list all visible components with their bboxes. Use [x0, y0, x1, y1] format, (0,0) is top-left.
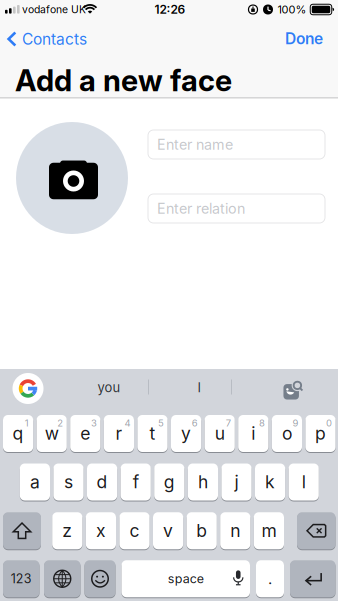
button[interactable]: Image search: [282, 381, 304, 400]
staticText: 8: [259, 417, 265, 429]
staticText: 3: [91, 417, 97, 429]
button[interactable]: Add photo: [16, 122, 128, 234]
staticText: o: [282, 423, 292, 444]
staticText: j: [234, 471, 238, 493]
button[interactable]: space: [121, 560, 250, 598]
button[interactable]: p: [305, 414, 336, 452]
button[interactable]: Done: [243, 26, 323, 50]
button[interactable]: Emoji: [84, 560, 115, 598]
staticText: 9: [292, 417, 298, 429]
staticText: 5: [158, 417, 164, 429]
staticText: i: [251, 423, 255, 444]
staticText: s: [64, 471, 73, 493]
staticText: a: [30, 471, 40, 493]
button[interactable]: Google search: [12, 373, 43, 404]
staticText: vodafone UK: [22, 3, 86, 16]
button[interactable]: f: [121, 463, 151, 501]
button[interactable]: a: [20, 463, 50, 501]
staticText: 0: [326, 417, 332, 429]
button[interactable]: Enter name: [148, 130, 325, 159]
button[interactable]: v: [153, 512, 183, 550]
button[interactable]: e: [70, 414, 100, 452]
staticText: 100%: [277, 3, 306, 16]
staticText: p: [315, 423, 326, 444]
staticText: Contacts: [22, 30, 87, 48]
button[interactable]: j: [221, 463, 252, 501]
staticText: 4: [124, 417, 130, 429]
button[interactable]: c: [119, 512, 150, 550]
button[interactable]: Enter relation: [148, 194, 325, 223]
staticText: k: [265, 471, 275, 493]
staticText: c: [129, 520, 139, 541]
staticText: f: [133, 471, 139, 493]
staticText: t: [149, 423, 155, 444]
staticText: Done: [285, 29, 323, 48]
button[interactable]: Delete: [297, 512, 335, 550]
staticText: z: [62, 520, 72, 541]
staticText: u: [215, 423, 225, 444]
button[interactable]: Back to Contacts: [7, 27, 117, 51]
staticText: m: [261, 520, 276, 541]
button[interactable]: Return: [290, 560, 335, 598]
staticText: Enter name: [157, 136, 233, 153]
staticText: d: [97, 471, 108, 493]
staticText: l: [302, 471, 306, 493]
staticText: q: [13, 423, 24, 444]
button[interactable]: t: [137, 414, 168, 452]
staticText: b: [196, 520, 207, 541]
button[interactable]: k: [255, 463, 285, 501]
button[interactable]: you: [79, 375, 139, 399]
button[interactable]: s: [53, 463, 84, 501]
button[interactable]: z: [52, 512, 82, 550]
staticText: 2: [57, 417, 63, 429]
button[interactable]: 123: [3, 560, 39, 598]
button[interactable]: Next keyboard: [44, 560, 80, 598]
staticText: y: [181, 423, 191, 444]
staticText: n: [230, 520, 240, 541]
staticText: r: [115, 423, 122, 444]
button[interactable]: g: [154, 463, 184, 501]
staticText: I: [197, 380, 200, 395]
staticText: 7: [226, 417, 231, 429]
button[interactable]: l: [289, 463, 319, 501]
button[interactable]: u: [205, 414, 235, 452]
staticText: x: [96, 520, 106, 541]
staticText: 1: [25, 417, 29, 429]
staticText: e: [80, 423, 90, 444]
button[interactable]: b: [187, 512, 217, 550]
staticText: you: [97, 380, 120, 395]
staticText: w: [45, 423, 59, 444]
staticText: space: [168, 571, 204, 586]
button[interactable]: I: [179, 375, 219, 399]
button[interactable]: n: [220, 512, 250, 550]
staticText: .: [268, 570, 272, 588]
button[interactable]: y: [171, 414, 201, 452]
button[interactable]: r: [104, 414, 134, 452]
staticText: 123: [11, 571, 32, 586]
button[interactable]: x: [86, 512, 116, 550]
button[interactable]: i: [238, 414, 268, 452]
button[interactable]: h: [188, 463, 218, 501]
button[interactable]: .: [256, 560, 284, 598]
staticText: g: [164, 471, 175, 493]
staticText: 12:26: [154, 2, 185, 17]
button[interactable]: o: [272, 414, 302, 452]
staticText: h: [198, 471, 208, 493]
button[interactable]: Shift: [3, 512, 41, 550]
button[interactable]: d: [87, 463, 117, 501]
staticText: v: [163, 520, 173, 541]
button[interactable]: m: [254, 512, 284, 550]
button[interactable]: q: [3, 414, 33, 452]
button[interactable]: w: [37, 414, 67, 452]
staticText: Enter relation: [157, 200, 245, 217]
staticText: Add a new face: [15, 63, 232, 98]
staticText: 6: [192, 417, 198, 429]
